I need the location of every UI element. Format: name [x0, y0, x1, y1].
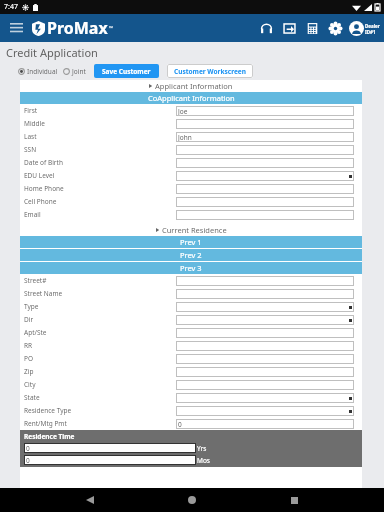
- button[interactable]: Home: [180, 488, 204, 512]
- button[interactable]: Rent/Mtg Pmt: [20, 417, 362, 430]
- button[interactable]: Dir: [20, 313, 362, 326]
- button[interactable]: Home Phone: [20, 182, 362, 195]
- button[interactable]: Individual: [18, 67, 58, 76]
- button[interactable]: Apt/Ste: [20, 326, 362, 339]
- button[interactable]: Customer Workscreen: [167, 64, 253, 78]
- staticText: Street#: [24, 276, 47, 285]
- button[interactable]: Street#: [20, 274, 362, 287]
- button[interactable]: Recents: [282, 488, 306, 512]
- staticText: Joint: [72, 67, 86, 76]
- staticText: Individual: [27, 67, 58, 76]
- staticText: 0: [26, 444, 30, 453]
- staticText: Rent/Mtg Pmt: [24, 419, 67, 428]
- staticText: Apt/Ste: [24, 328, 47, 337]
- staticText: Residence Time: [24, 432, 75, 441]
- staticText: CoApplicant Information: [148, 93, 235, 103]
- staticText: ™: [109, 25, 113, 32]
- button[interactable]: RR: [20, 339, 362, 352]
- button[interactable]: Middle: [20, 117, 362, 130]
- staticText: 7:47: [4, 2, 18, 12]
- button[interactable]: Save Customer: [94, 64, 159, 78]
- staticText: Type: [24, 302, 39, 311]
- staticText: EDU Level: [24, 171, 55, 180]
- button[interactable]: Residence Type: [20, 404, 362, 417]
- button[interactable]: State: [20, 391, 362, 404]
- staticText: Yrs: [197, 444, 207, 453]
- button[interactable]: Type: [20, 300, 362, 313]
- button[interactable]: Settings: [326, 19, 344, 37]
- button[interactable]: Prev 2: [20, 249, 362, 261]
- button[interactable]: Menu: [6, 18, 26, 38]
- staticText: Joe: [178, 107, 188, 116]
- staticText: City: [24, 380, 36, 389]
- staticText: Mos: [197, 456, 210, 465]
- button[interactable]: Calculator: [303, 19, 321, 37]
- staticText: John: [178, 133, 192, 142]
- staticText: Prev 1: [180, 237, 202, 247]
- staticText: Middle: [24, 119, 45, 128]
- staticText: ProMax: [47, 17, 108, 39]
- staticText: RR: [24, 341, 33, 350]
- button[interactable]: EDU Level: [20, 169, 362, 182]
- staticText: 0: [178, 420, 182, 429]
- staticText: Dir: [24, 315, 34, 324]
- staticText: State: [24, 393, 40, 402]
- button[interactable]: 0: [24, 455, 196, 465]
- button[interactable]: Street Name: [20, 287, 362, 300]
- button[interactable]: PO: [20, 352, 362, 365]
- button[interactable]: Support headset: [257, 19, 275, 37]
- staticText: Zip: [24, 367, 34, 376]
- button[interactable]: CoApplicant Information: [20, 92, 362, 104]
- button[interactable]: Dealer: [349, 21, 380, 36]
- staticText: Street Name: [24, 289, 63, 298]
- staticText: SSN: [24, 145, 37, 154]
- button[interactable]: First: [20, 104, 362, 117]
- button[interactable]: Prev 1: [20, 236, 362, 248]
- button[interactable]: Email: [20, 208, 362, 221]
- button[interactable]: Back: [78, 488, 102, 512]
- staticText: ID#1: [365, 29, 376, 35]
- staticText: Last: [24, 132, 37, 141]
- button[interactable]: City: [20, 378, 362, 391]
- staticText: Credit Application: [6, 45, 98, 60]
- staticText: Customer Workscreen: [174, 67, 246, 76]
- staticText: Email: [24, 210, 41, 219]
- button[interactable]: ProMax: [32, 17, 113, 39]
- staticText: First: [24, 106, 38, 115]
- staticText: Cell Phone: [24, 197, 57, 206]
- staticText: Prev 2: [180, 250, 202, 260]
- staticText: PO: [24, 354, 34, 363]
- button[interactable]: Date of Birth: [20, 156, 362, 169]
- button[interactable]: Cell Phone: [20, 195, 362, 208]
- button[interactable]: Prev 3: [20, 262, 362, 274]
- button[interactable]: Joint: [63, 67, 86, 76]
- button[interactable]: Zip: [20, 365, 362, 378]
- staticText: Save Customer: [102, 67, 151, 76]
- staticText: Applicant Information: [155, 81, 233, 91]
- button[interactable]: Current Residence: [20, 224, 362, 236]
- staticText: Prev 3: [180, 263, 202, 273]
- button[interactable]: Messages: [280, 19, 298, 37]
- button[interactable]: Applicant Information: [20, 80, 362, 92]
- button[interactable]: SSN: [20, 143, 362, 156]
- button[interactable]: 0: [24, 443, 196, 453]
- staticText: 0: [26, 456, 30, 465]
- staticText: Dealer: [365, 23, 380, 29]
- staticText: Home Phone: [24, 184, 64, 193]
- button[interactable]: Last: [20, 130, 362, 143]
- staticText: Current Residence: [162, 225, 227, 235]
- staticText: Date of Birth: [24, 158, 63, 167]
- staticText: Residence Type: [24, 406, 72, 415]
